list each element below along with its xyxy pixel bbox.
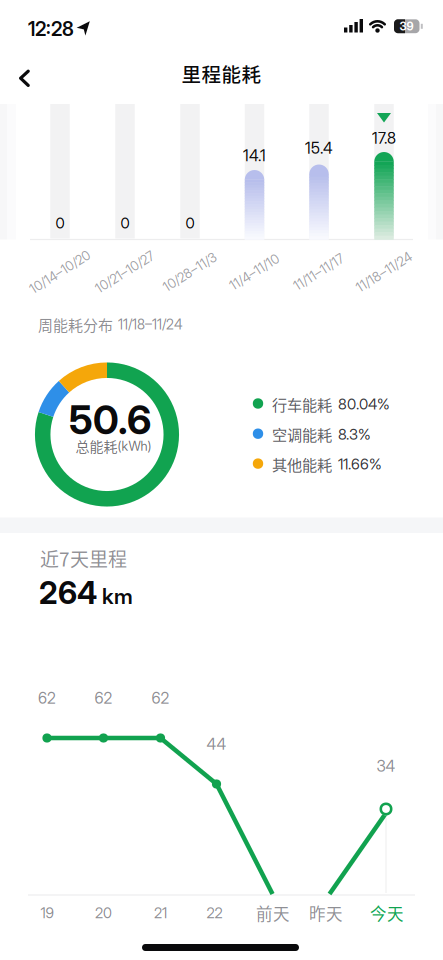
staticText: 62 <box>38 689 56 707</box>
staticText: 0 <box>185 214 194 232</box>
staticText: 0 <box>55 214 64 232</box>
staticText: 前天 <box>256 901 290 925</box>
staticText: 14.1 <box>243 146 266 165</box>
staticText: 11/18–11/24 <box>118 316 183 333</box>
staticText: 8.3% <box>338 425 371 443</box>
button[interactable]: 10/21–10/27 <box>115 104 135 238</box>
staticText: 19 <box>40 904 53 922</box>
staticText: 39 <box>399 19 413 33</box>
staticText: 50.6 <box>69 396 151 444</box>
button[interactable]: 10/14–10/20 <box>50 104 70 238</box>
staticText: 12:28 <box>28 17 74 41</box>
staticText: 80.04% <box>338 395 390 413</box>
staticText: km <box>102 583 133 609</box>
staticText: 10/21–10/27 <box>91 264 158 280</box>
staticText: 周能耗分布 <box>38 313 113 335</box>
staticText: 17.8 <box>372 129 396 147</box>
staticText: 0 <box>120 214 129 232</box>
button[interactable]: 10/28–11/3 <box>180 104 200 238</box>
button[interactable]: 11/18–11/24 <box>374 104 394 238</box>
staticText: 10/14–10/20 <box>25 264 94 280</box>
staticText: 11/18–11/24 <box>352 264 415 280</box>
staticText: 行车能耗 <box>272 393 332 415</box>
staticText: 34 <box>376 757 395 775</box>
button[interactable]: 11/4–11/10 <box>245 104 264 238</box>
staticText: 空调能耗 <box>272 423 332 445</box>
staticText: 11/11–11/17 <box>290 264 347 280</box>
staticText: 62 <box>94 689 112 707</box>
staticText: 21 <box>154 904 167 922</box>
staticText: 62 <box>151 689 169 707</box>
staticText: 22 <box>206 904 222 922</box>
staticText: 15.4 <box>305 139 333 157</box>
staticText: 11/4–11/10 <box>226 264 282 280</box>
staticText: (kWh) <box>117 438 151 454</box>
staticText: 44 <box>206 735 226 753</box>
staticText: 10/28–11/3 <box>159 264 220 280</box>
button[interactable]: 11/11–11/17 <box>309 104 329 238</box>
staticText: 昨天 <box>309 901 343 925</box>
staticText: 264 <box>39 574 97 611</box>
staticText: 11.66% <box>338 455 382 473</box>
staticText: 20 <box>95 904 112 922</box>
button[interactable]: Back <box>2 56 46 100</box>
staticText: 今天 <box>370 901 404 925</box>
staticText: 其他能耗 <box>272 453 332 475</box>
staticText: 近7天里程 <box>40 544 127 572</box>
staticText: 总能耗 <box>75 436 117 456</box>
staticText: 里程能耗 <box>181 59 261 88</box>
